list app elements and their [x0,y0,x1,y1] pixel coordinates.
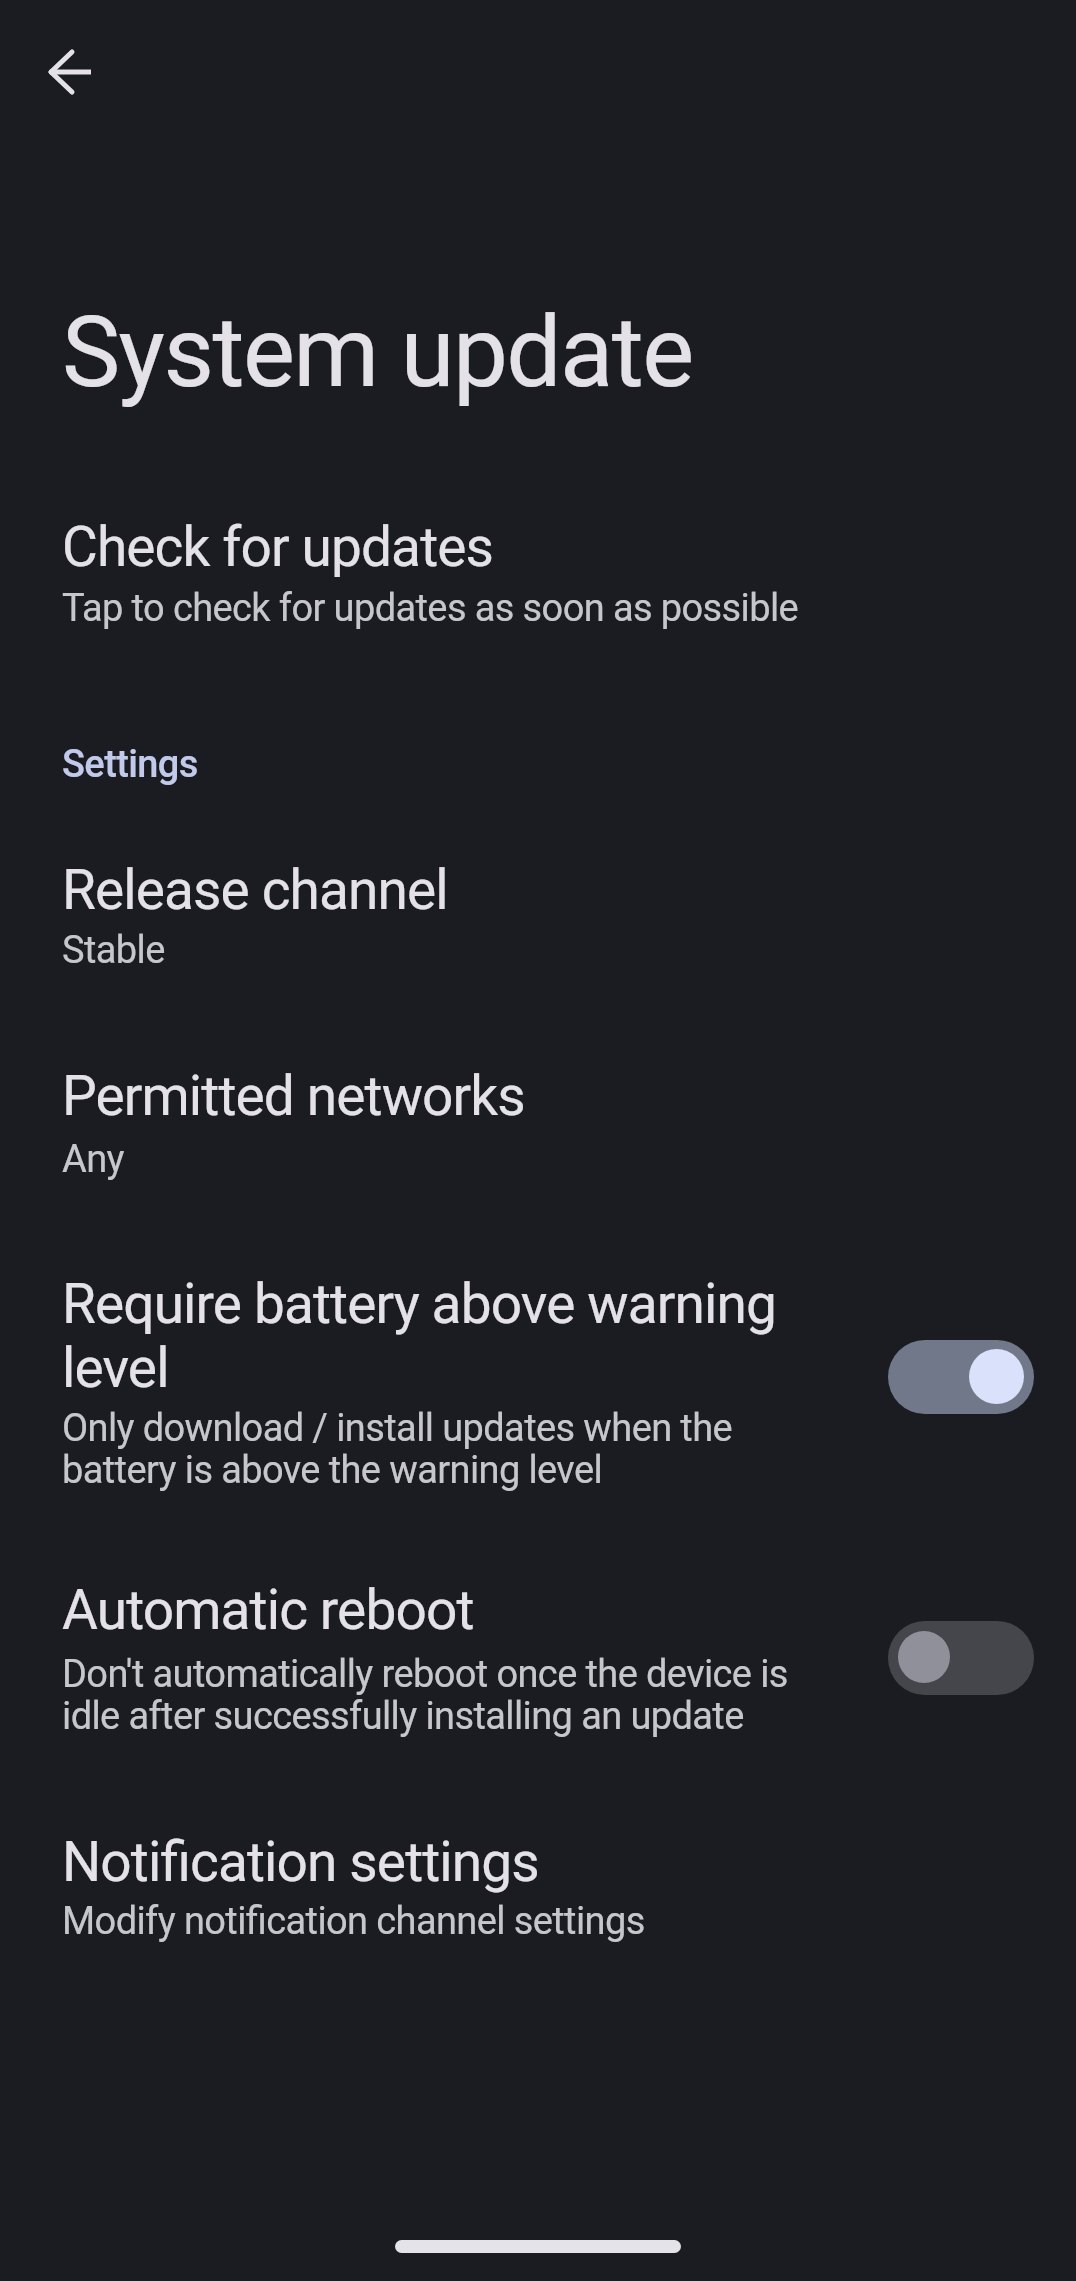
staticText: Only download / install updates when the… [62,1406,733,1493]
staticText: Don't automatically reboot once the devi… [62,1652,788,1739]
button[interactable] [0,490,1076,660]
button[interactable] [888,1340,1034,1414]
button[interactable] [0,1812,1076,1962]
button[interactable] [395,2240,681,2253]
staticText: Release channel [62,858,448,922]
button[interactable] [0,1560,1076,1755]
staticText: Check for updates [62,515,494,579]
staticText: Notification settings [62,1830,539,1894]
button[interactable] [888,1621,1034,1695]
staticText: System update [62,295,693,410]
button[interactable] [0,1048,1076,1198]
staticText: Stable [62,928,165,973]
button[interactable] [0,1255,1076,1505]
staticText: Modify notification channel settings [62,1899,645,1944]
staticText: Any [62,1137,124,1182]
staticText: Automatic reboot [62,1578,474,1642]
staticText: Tap to check for updates as soon as poss… [62,586,799,631]
staticText: Settings [62,742,198,787]
staticText: Require battery above warning level [62,1272,776,1400]
button[interactable] [22,24,118,120]
button[interactable] [0,840,1076,990]
staticText: Permitted networks [62,1064,525,1128]
